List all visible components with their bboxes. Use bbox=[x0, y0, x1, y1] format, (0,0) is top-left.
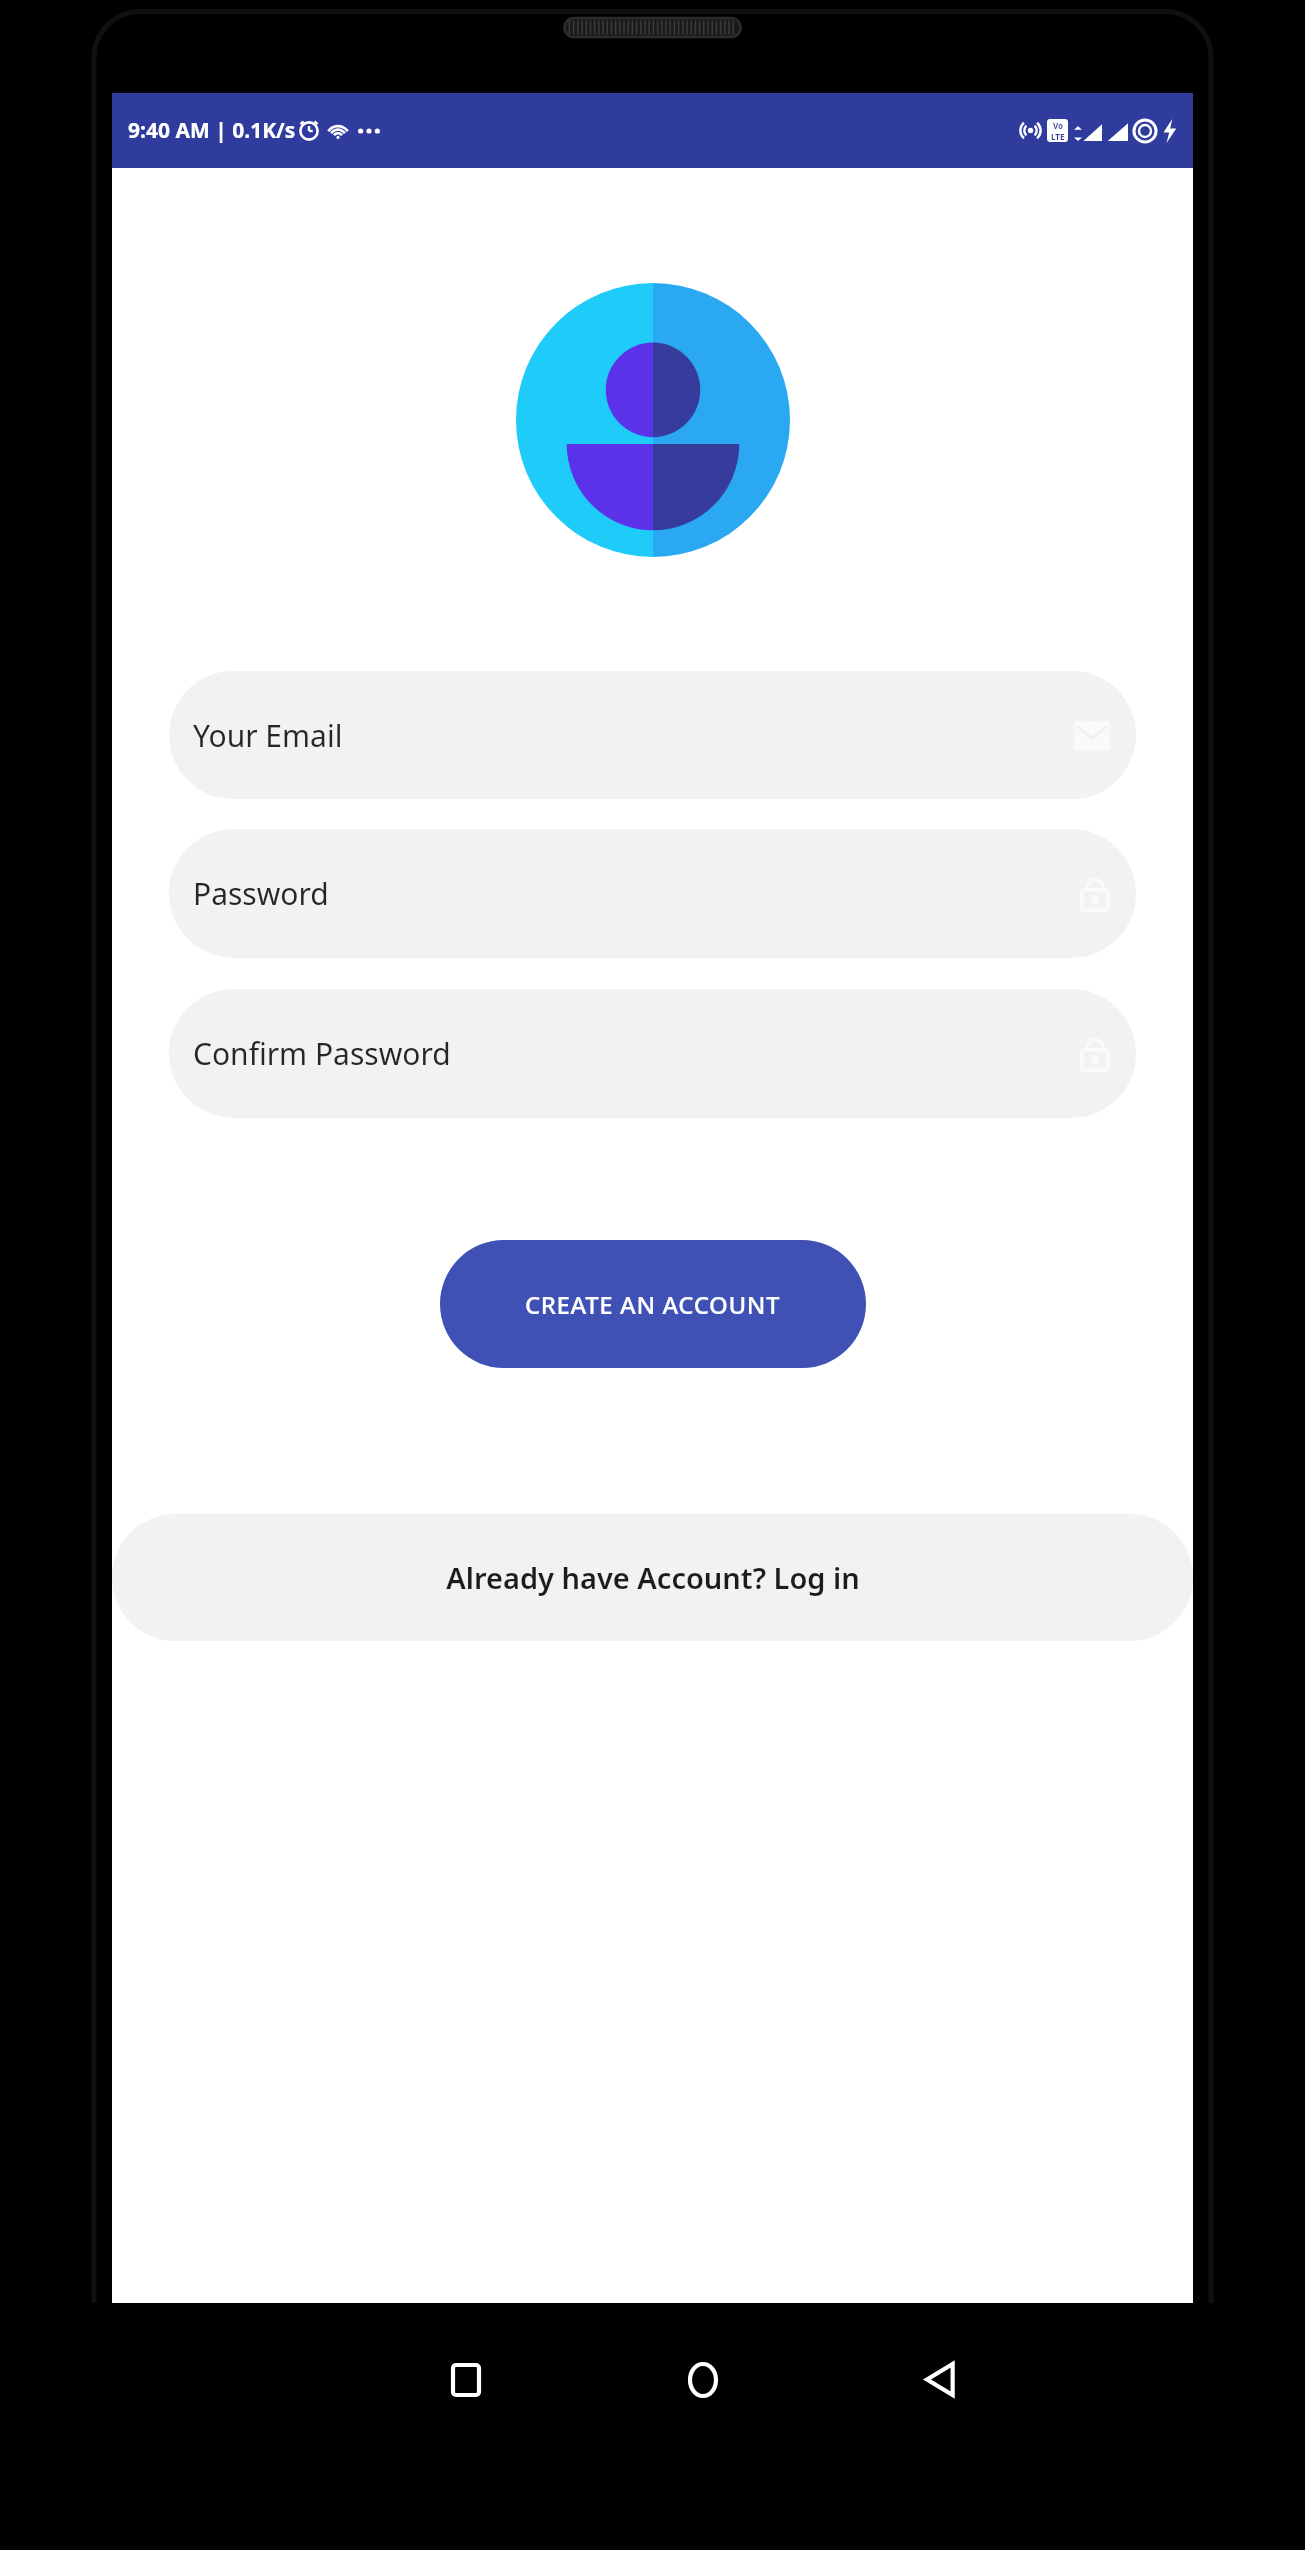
button[interactable]: Home bbox=[591, 2303, 815, 2456]
button[interactable]: CREATE AN ACCOUNT bbox=[440, 1240, 866, 1368]
staticText: CREATE AN ACCOUNT bbox=[525, 1288, 781, 1321]
button[interactable]: Password bbox=[169, 829, 1136, 958]
staticText: Confirm Password bbox=[193, 1033, 451, 1074]
button[interactable]: Confirm Password bbox=[169, 989, 1136, 1118]
staticText: Password bbox=[193, 873, 329, 914]
staticText: LTE bbox=[1051, 131, 1065, 142]
staticText: 9:40 AM | 0.1K/s bbox=[128, 116, 296, 145]
staticText: Vo bbox=[1053, 120, 1064, 131]
button[interactable]: Recent apps bbox=[354, 2303, 578, 2456]
staticText: Your Email bbox=[193, 715, 343, 756]
button[interactable]: Already have Account? Log in bbox=[112, 1514, 1193, 1641]
other: Profile avatar bbox=[516, 283, 790, 557]
button[interactable]: Back bbox=[828, 2303, 1052, 2456]
button[interactable]: Your Email bbox=[169, 671, 1136, 799]
staticText: Already have Account? Log in bbox=[446, 1558, 860, 1597]
